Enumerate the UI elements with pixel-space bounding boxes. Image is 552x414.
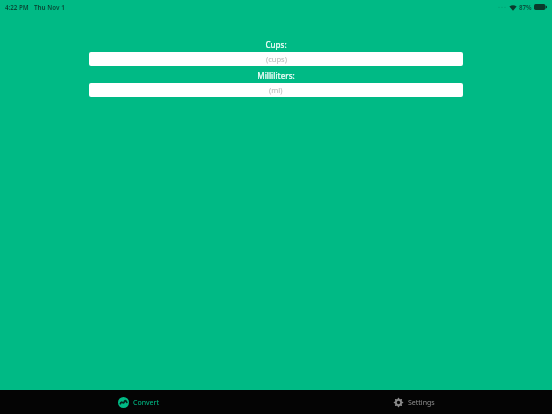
button[interactable]: Convert	[0, 390, 276, 414]
button[interactable]: (cups)	[89, 52, 463, 66]
staticText: Milliliters:	[89, 70, 463, 81]
staticText: Convert	[133, 398, 159, 408]
staticText: Settings	[408, 398, 435, 408]
staticText: 4:22 PM	[5, 3, 29, 11]
staticText: Thu Nov 1	[34, 3, 65, 11]
button[interactable]: (ml)	[89, 83, 463, 97]
staticText: Cups:	[89, 39, 463, 50]
staticText: (ml)	[269, 85, 283, 95]
staticText: 87%	[519, 3, 532, 11]
button[interactable]: Settings	[276, 390, 552, 414]
staticText: (cups)	[266, 54, 287, 64]
